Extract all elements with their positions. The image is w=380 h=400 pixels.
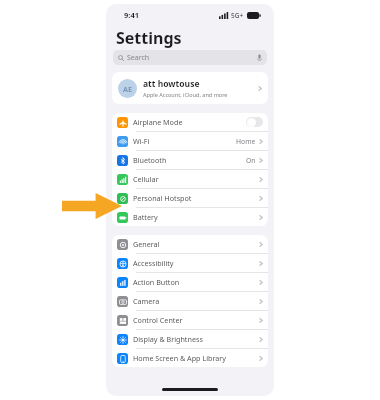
button[interactable]: Home Screen & App Library — [112, 349, 268, 367]
staticText: Accessibility — [133, 258, 259, 268]
staticText: Home Screen & App Library — [133, 353, 259, 363]
button[interactable]: Control Center — [112, 311, 268, 329]
button[interactable]: Action Button — [112, 273, 268, 291]
staticText: On — [246, 156, 256, 165]
staticText: Cellular — [133, 174, 259, 184]
button[interactable]: Accessibility — [112, 254, 268, 272]
staticText: 5G+ — [231, 11, 244, 20]
staticText: att howtouse — [143, 78, 200, 90]
staticText: Wi-Fi — [133, 136, 236, 146]
staticText: Search — [127, 53, 150, 63]
button[interactable]: Search — [113, 50, 267, 65]
button[interactable]: Wi-Fi — [112, 132, 268, 150]
other: Pointer to Cellular — [62, 193, 122, 219]
button[interactable]: AE — [112, 72, 268, 104]
staticText: Apple Account, iCloud, and more — [143, 91, 228, 98]
staticText: Airplane Mode — [133, 117, 246, 127]
staticText: Battery — [133, 212, 259, 222]
button[interactable]: Toggle Airplane Mode — [246, 117, 263, 127]
staticText: General — [133, 239, 259, 249]
button[interactable]: General — [112, 235, 268, 253]
staticText: Action Button — [133, 277, 259, 287]
staticText: Settings — [116, 27, 182, 49]
staticText: AE — [123, 84, 133, 94]
button[interactable]: Display & Brightness — [112, 330, 268, 348]
staticText: 9:41 — [124, 10, 139, 20]
staticText: Personal Hotspot — [133, 193, 259, 203]
button[interactable]: Airplane Mode — [112, 113, 268, 131]
staticText: Control Center — [133, 315, 259, 325]
staticText: Display & Brightness — [133, 334, 259, 344]
button[interactable]: Cellular — [112, 170, 268, 188]
staticText: Home — [236, 137, 256, 146]
button[interactable]: Camera — [112, 292, 268, 310]
button[interactable]: Personal Hotspot — [112, 189, 268, 207]
button[interactable]: Battery — [112, 208, 268, 226]
staticText: Bluetooth — [133, 155, 246, 165]
staticText: Camera — [133, 296, 259, 306]
button[interactable]: Bluetooth — [112, 151, 268, 169]
